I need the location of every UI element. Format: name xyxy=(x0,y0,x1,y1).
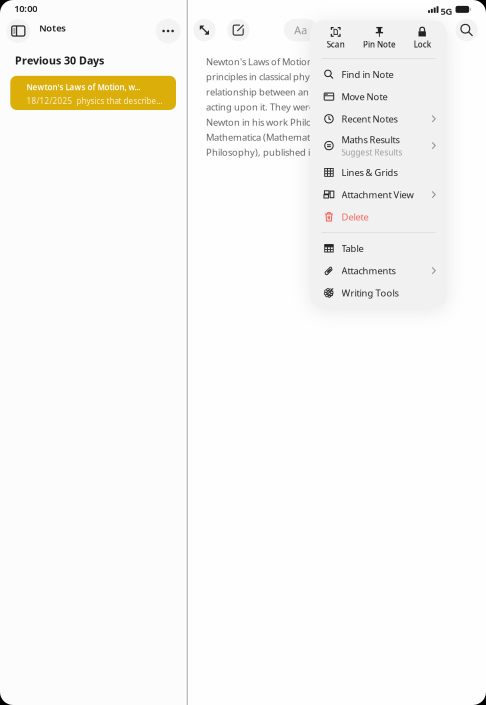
button[interactable]: Pin Note xyxy=(361,24,397,54)
button[interactable]: Lock xyxy=(397,24,447,54)
staticText: 5G xyxy=(441,5,453,17)
staticText: Aa xyxy=(294,23,307,37)
staticText: Pin Note xyxy=(363,39,396,50)
staticText: principles in classical physics that des… xyxy=(206,71,397,83)
staticText: Find in Note xyxy=(341,68,393,81)
button[interactable]: Search xyxy=(455,19,478,41)
button[interactable]: More options xyxy=(156,18,181,43)
staticText: Mathematica (Mathematical Principles of … xyxy=(206,131,411,143)
staticText: Lines & Grids xyxy=(341,166,397,179)
staticText: Table xyxy=(341,242,363,255)
button[interactable]: Text format xyxy=(284,19,318,41)
button[interactable]: Maths Results xyxy=(310,130,447,161)
button[interactable]: Lines & Grids xyxy=(310,161,447,183)
button[interactable]: Find in Note xyxy=(310,63,447,85)
staticText: Writing Tools xyxy=(341,287,398,299)
button[interactable]: Scan xyxy=(310,24,361,54)
staticText: Philosophy), published in 1687. xyxy=(206,146,341,158)
staticText: Move Note xyxy=(341,90,387,103)
staticText: 18/12/2025 physics that describe... xyxy=(26,96,162,106)
staticText: 10:00 xyxy=(14,2,37,14)
button[interactable]: Newton's Laws of Motion, w... xyxy=(10,76,176,110)
staticText: acting upon it. They were formulated by … xyxy=(206,101,414,113)
staticText: Attachments xyxy=(341,264,395,277)
button[interactable]: Toggle Sidebar xyxy=(6,19,30,43)
button[interactable]: Attachment View xyxy=(310,183,447,206)
staticText: Lock xyxy=(414,39,431,50)
button[interactable]: New note xyxy=(227,19,249,41)
button[interactable]: Recent Notes xyxy=(310,108,447,130)
staticText: Suggest Results xyxy=(341,147,402,158)
staticText: Maths Results xyxy=(341,133,399,146)
button[interactable]: Expand note xyxy=(193,19,216,41)
staticText: relationship between an object and the f… xyxy=(206,86,400,98)
staticText: Newton's Laws of Motion, w... xyxy=(26,82,140,92)
staticText: Newton's Laws of Motion, which are three… xyxy=(206,55,442,68)
staticText: Newton in his work Philosophiae Naturali… xyxy=(206,116,425,128)
button[interactable]: Delete xyxy=(310,206,447,228)
staticText: Previous 30 Days xyxy=(15,53,104,67)
button[interactable]: Table xyxy=(310,237,447,259)
staticText: Scan xyxy=(327,39,345,50)
button[interactable]: Writing Tools xyxy=(310,282,447,304)
button[interactable]: Attachments xyxy=(310,259,447,282)
staticText: Recent Notes xyxy=(341,113,397,125)
staticText: Delete xyxy=(341,211,368,223)
button[interactable]: Move Note xyxy=(310,85,447,108)
staticText: Attachment View xyxy=(341,188,413,201)
staticText: Notes xyxy=(39,22,66,34)
